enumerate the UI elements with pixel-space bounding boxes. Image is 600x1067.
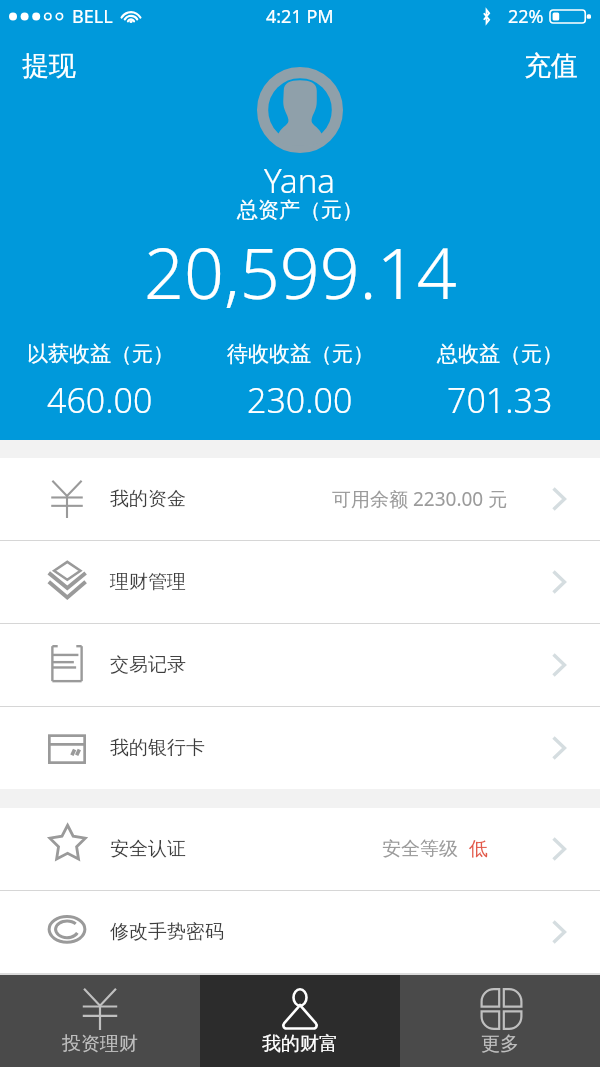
staticText: 更多 [481, 1032, 519, 1056]
staticText: 安全认证 [110, 837, 186, 861]
staticText: 安全等级 [382, 837, 458, 861]
staticText: 理财管理 [110, 570, 186, 594]
staticText: 460.00 [47, 377, 153, 423]
button[interactable]: 提现 [22, 49, 76, 83]
staticText: 20,599.14 [144, 224, 457, 319]
button[interactable]: 我的银行卡 [0, 707, 600, 789]
staticText: 总收益（元） [437, 341, 563, 367]
staticText: 投资理财 [62, 1032, 138, 1056]
staticText: Yana [264, 158, 336, 203]
button[interactable]: 交易记录 [0, 624, 600, 706]
staticText: 22% [508, 4, 544, 29]
staticText: BELL [72, 4, 113, 29]
staticText: 我的财富 [262, 1032, 338, 1056]
staticText: 我的银行卡 [110, 736, 205, 760]
staticText: 701.33 [447, 377, 553, 423]
staticText: 4:21 PM [266, 4, 334, 29]
button[interactable]: 投资理财 [0, 975, 200, 1067]
staticText: 总资产（元） [237, 197, 363, 223]
button[interactable]: 安全认证 [0, 808, 600, 890]
staticText: 我的资金 [110, 487, 186, 511]
staticText: 230.00 [247, 377, 353, 423]
button[interactable]: 更多 [400, 975, 600, 1067]
button[interactable]: 修改手势密码 [0, 891, 600, 973]
button[interactable]: 理财管理 [0, 541, 600, 623]
staticText: 低 [469, 837, 488, 861]
button[interactable]: 我的资金 [0, 458, 600, 540]
staticText: 交易记录 [110, 653, 186, 677]
staticText: 以获收益（元） [27, 341, 174, 367]
staticText: 修改手势密码 [110, 920, 224, 944]
staticText: 待收收益（元） [227, 341, 374, 367]
staticText: 可用余额 2230.00 元 [332, 486, 508, 512]
button[interactable]: 我的财富 [200, 975, 400, 1067]
button[interactable]: 充值 [524, 49, 578, 83]
